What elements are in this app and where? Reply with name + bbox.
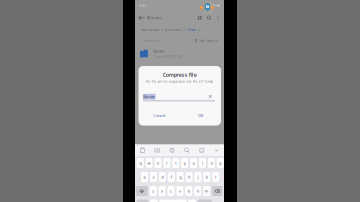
button[interactable]: c (167, 186, 174, 196)
button[interactable]: z (150, 186, 157, 196)
staticText: Server (143, 94, 155, 99)
button[interactable]: j (194, 172, 201, 182)
staticText: Server (153, 48, 165, 54)
button[interactable]: t (172, 158, 179, 168)
staticText: n (197, 188, 199, 194)
button[interactable]: g (177, 172, 184, 182)
staticText: y (184, 160, 186, 166)
button[interactable]: f (168, 172, 175, 182)
staticText: Time (latest) (199, 39, 215, 43)
button[interactable]: d (159, 172, 166, 182)
button[interactable]: Period (188, 199, 196, 202)
staticText: ATmatch (187, 28, 197, 32)
staticText: z (152, 188, 154, 194)
staticText: h (188, 174, 190, 180)
staticText: k (206, 174, 208, 180)
button[interactable]: s (150, 172, 157, 182)
staticText: i (202, 160, 203, 166)
button[interactable]: Keyboard tool (150, 144, 165, 157)
staticText: c (170, 188, 172, 194)
button[interactable]: Time (latest) (194, 38, 218, 43)
button[interactable]: Keyboard tool (135, 144, 150, 157)
button[interactable]: u (190, 158, 197, 168)
button[interactable]: Clear text (207, 93, 213, 99)
button[interactable]: h (186, 172, 193, 182)
staticText: Compress file (163, 71, 197, 78)
staticText: s (152, 174, 154, 180)
staticText: 9:41 (139, 3, 146, 8)
button[interactable]: e (154, 158, 161, 168)
button[interactable]: Cancel (138, 109, 180, 121)
button[interactable]: p (217, 158, 224, 168)
button[interactable]: OK (180, 109, 221, 121)
button[interactable]: Search (204, 12, 214, 24)
button[interactable]: Server (135, 46, 224, 60)
button[interactable]: Keyboard tool (179, 144, 194, 157)
staticText: v (179, 188, 181, 194)
staticText: xenbus.auto (165, 28, 182, 32)
button[interactable]: w (146, 158, 153, 168)
button[interactable]: b (185, 186, 192, 196)
button[interactable]: Shift (136, 186, 148, 196)
button[interactable]: n (194, 186, 201, 196)
button[interactable]: m (203, 186, 210, 196)
staticText: u (193, 160, 195, 166)
button[interactable]: Keyboard tool (209, 144, 224, 157)
staticText: Cancel (153, 113, 165, 118)
button[interactable]: Backspace (212, 186, 223, 196)
staticText: a (144, 174, 146, 180)
staticText: x (161, 188, 163, 194)
staticText: q (139, 160, 141, 166)
staticText: OK (198, 113, 203, 118)
staticText: The file will be compressed into the ZIP… (146, 80, 214, 83)
button[interactable]: Back (137, 12, 146, 24)
button[interactable]: Keyboard tool (194, 144, 209, 157)
button[interactable]: r (163, 158, 170, 168)
staticText: o (210, 160, 212, 166)
button[interactable]: q (137, 158, 144, 168)
staticText: 1 item 2025/01/20 (153, 55, 182, 59)
button[interactable]: l (212, 172, 219, 182)
button[interactable]: Comma (150, 199, 158, 202)
staticText: Device storage (140, 28, 159, 32)
button[interactable]: o (208, 158, 215, 168)
staticText: m (205, 188, 209, 194)
button[interactable]: k (203, 172, 210, 182)
staticText: d (161, 174, 163, 180)
button[interactable]: Grid view (195, 12, 204, 24)
button[interactable]: v (176, 186, 183, 196)
button[interactable]: a (141, 172, 148, 182)
button[interactable]: y (181, 158, 188, 168)
staticText: e (157, 160, 159, 166)
staticText: 1 item in this (140, 39, 159, 43)
staticText: p (219, 160, 221, 166)
button[interactable]: More options (214, 12, 222, 24)
button[interactable]: i (199, 158, 206, 168)
button[interactable]: Keyboard tool (165, 144, 179, 157)
staticText: f (171, 174, 172, 180)
staticText: b (188, 188, 190, 194)
staticText: t (175, 160, 176, 166)
staticText: w (148, 160, 151, 166)
staticText: g (179, 174, 181, 180)
staticText: r (166, 160, 168, 166)
staticText: ATmatch (146, 15, 161, 20)
button[interactable]: x (159, 186, 166, 196)
staticText: l (215, 174, 216, 180)
